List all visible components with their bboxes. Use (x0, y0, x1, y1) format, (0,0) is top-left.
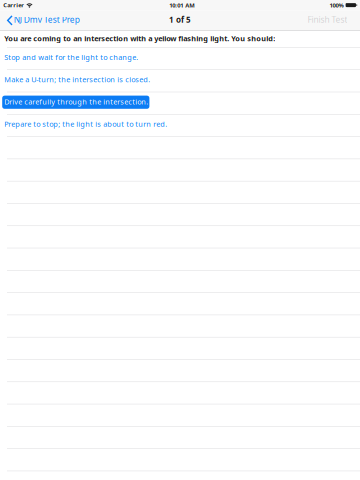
staticText: Finish Test (307, 14, 347, 25)
staticText: Carrier (3, 1, 24, 9)
button[interactable]: Finish Test (301, 10, 360, 31)
staticText: Drive carefully through the intersection… (4, 97, 148, 107)
button[interactable]: Drive carefully through the intersection… (0, 92, 360, 115)
staticText: 1 of 5 (169, 14, 191, 25)
staticText: You are coming to an intersection with a… (4, 33, 275, 43)
staticText: Make a U-turn; the intersection is close… (4, 74, 150, 84)
button[interactable]: Stop and wait for the light to change. (0, 48, 360, 70)
staticText: NJ Dmv Test Prep (14, 14, 80, 25)
staticText: 10:01 AM (169, 1, 195, 9)
staticText: Prepare to stop; the light is about to t… (4, 119, 167, 129)
button[interactable]: NJ Dmv Test Prep (0, 10, 85, 31)
staticText: Stop and wait for the light to change. (4, 52, 138, 62)
button[interactable]: Make a U-turn; the intersection is close… (0, 70, 360, 92)
staticText: 100% (329, 1, 343, 9)
button[interactable]: Prepare to stop; the light is about to t… (0, 115, 360, 137)
